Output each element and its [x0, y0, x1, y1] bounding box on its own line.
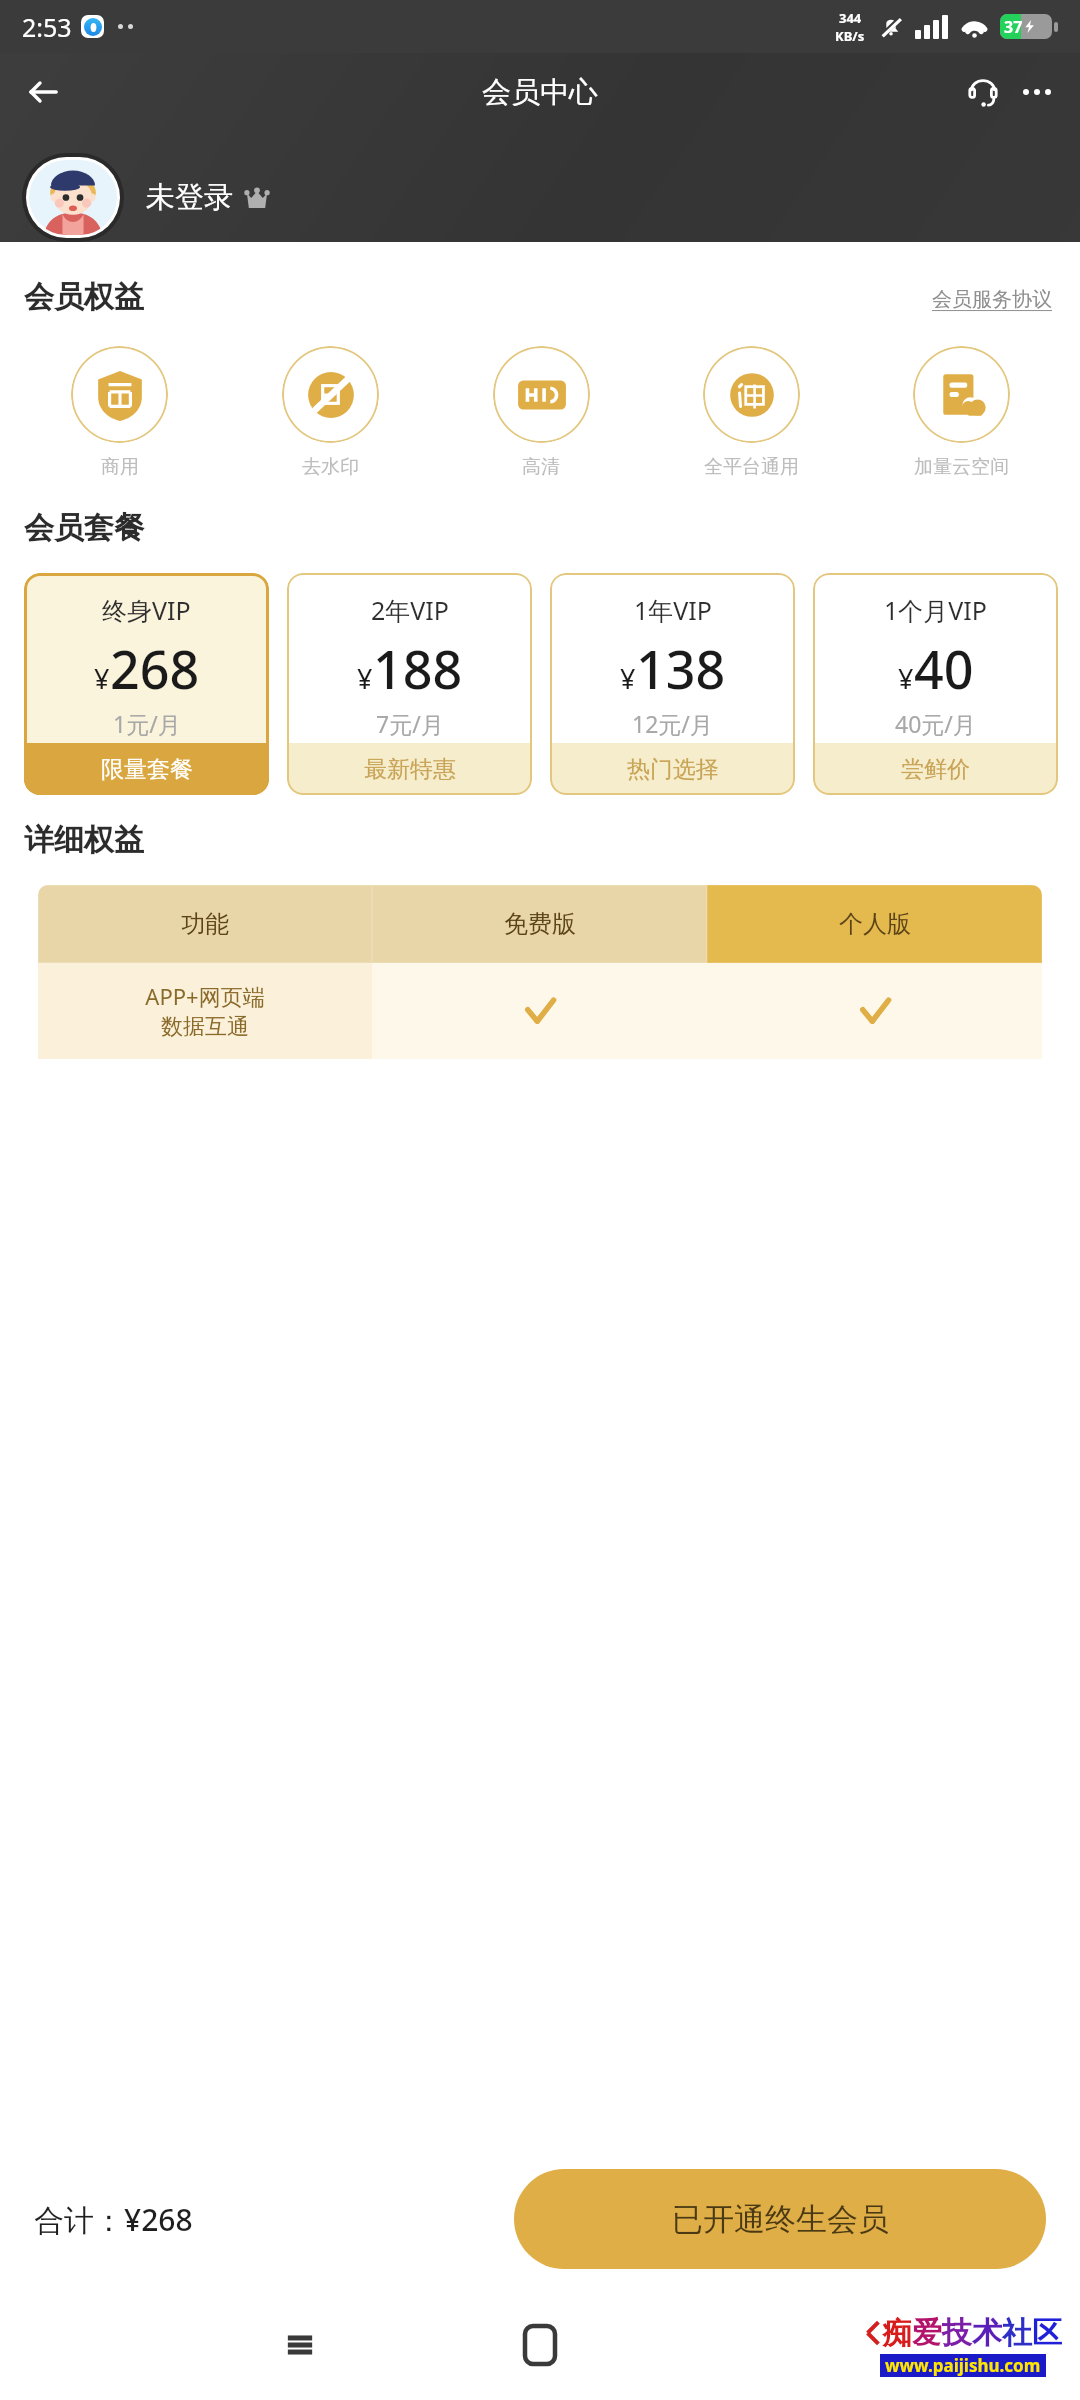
staticText: 终身VIP [102, 593, 191, 627]
staticText: 痴 [882, 2314, 912, 2352]
staticText: 热门选择 [627, 755, 719, 784]
button[interactable]: 加量云空间 [856, 346, 1066, 479]
staticText: 7元/月 [376, 708, 444, 739]
staticText: ¥ [357, 660, 373, 697]
staticText: 技 [942, 2314, 972, 2352]
staticText: 个人版 [839, 909, 911, 939]
staticText: 会员服务协议 [932, 287, 1052, 312]
staticText: 未登录 [146, 179, 233, 216]
staticText: 最新特惠 [364, 755, 456, 784]
button[interactable]: 终身VIP [24, 573, 269, 795]
staticText: 会员中心 [482, 74, 598, 111]
staticText: 已开通终生会员 [672, 2200, 889, 2239]
staticText: ¥ [94, 660, 110, 697]
button[interactable]: 2年VIP [287, 573, 532, 795]
staticText: 详细权益 [24, 821, 144, 859]
staticText: 尝鲜价 [901, 755, 970, 784]
staticText: KB/s [835, 27, 865, 45]
button[interactable]: Support [956, 65, 1010, 119]
button[interactable]: 全平台通用 [646, 346, 856, 479]
staticText: 免费版 [504, 909, 576, 939]
other: Silent [878, 14, 904, 40]
button[interactable]: 已开通终生会员 [514, 2169, 1046, 2269]
staticText: ¥ [620, 660, 636, 697]
staticText: 2年VIP [371, 593, 449, 627]
staticText: 商用 [101, 455, 139, 479]
button[interactable]: Back [14, 63, 72, 121]
staticText: 37 [1004, 16, 1023, 38]
other: Wi-Fi [961, 16, 988, 38]
staticText: APP+网页端 数据互通 [145, 981, 265, 1041]
staticText: 会员权益 [24, 278, 144, 316]
staticText: 会员套餐 [24, 509, 144, 547]
button[interactable]: 去水印 [225, 346, 436, 479]
staticText: 全平台通用 [704, 455, 799, 479]
staticText: 268 [110, 633, 200, 704]
staticText: 限量套餐 [101, 755, 193, 784]
staticText: 术 [972, 2314, 1002, 2352]
staticText: 社 [1002, 2314, 1032, 2352]
staticText: 1年VIP [634, 593, 712, 627]
button[interactable]: Home [485, 2290, 595, 2400]
staticText: 爱 [912, 2314, 942, 2352]
staticText: 188 [373, 633, 463, 704]
staticText: 12元/月 [632, 708, 713, 739]
staticText: 1个月VIP [884, 593, 987, 627]
staticText: 合计：¥268 [34, 2199, 193, 2240]
button[interactable]: 商用 [14, 346, 225, 479]
staticText: 高清 [522, 455, 560, 479]
button[interactable]: 1个月VIP [813, 573, 1058, 795]
button[interactable]: 1年VIP [550, 573, 795, 795]
button[interactable]: 高清 [436, 346, 646, 479]
staticText: 344 [839, 9, 862, 27]
staticText: 去水印 [302, 455, 359, 479]
staticText: 40元/月 [895, 708, 976, 739]
staticText: 1元/月 [113, 708, 181, 739]
staticText: 2:53 [22, 10, 72, 44]
staticText: ¥ [898, 660, 914, 697]
staticText: www.paijishu.com [885, 2354, 1041, 2377]
button[interactable]: More options [1010, 65, 1064, 119]
staticText: 40 [914, 633, 974, 704]
staticText: 区 [1032, 2314, 1062, 2352]
button[interactable]: 会员服务协议 [928, 283, 1056, 316]
button[interactable]: Recents [200, 2290, 400, 2400]
staticText: 功能 [181, 909, 229, 939]
button[interactable]: Avatar [29, 160, 117, 235]
staticText: 加量云空间 [914, 455, 1009, 479]
staticText: 138 [636, 633, 726, 704]
